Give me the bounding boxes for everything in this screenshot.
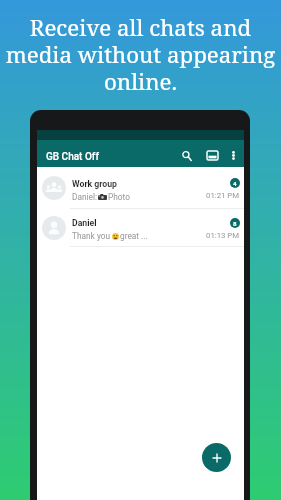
button[interactable]: More options [224,146,243,165]
button[interactable]: Daniel [37,209,244,247]
staticText: Work group [72,179,118,189]
staticText: Daniel [72,218,97,228]
staticText: GB Chat Off [46,151,99,163]
staticText: 01:21 PM [206,191,240,200]
staticText: Daniel: [72,192,97,202]
button[interactable]: Cards [203,146,222,165]
staticText: great ... [120,231,148,241]
staticText: Thank you [72,231,111,241]
staticText: Receive all chats and media without appe… [0,12,281,96]
staticText: 01:13 PM [206,231,240,240]
button[interactable]: Search [177,146,196,165]
button[interactable]: New chat [202,443,231,472]
staticText: 4 [233,180,237,187]
staticText: Photo [108,192,130,202]
staticText: 8 [233,220,237,227]
button[interactable]: Work group [37,167,244,209]
